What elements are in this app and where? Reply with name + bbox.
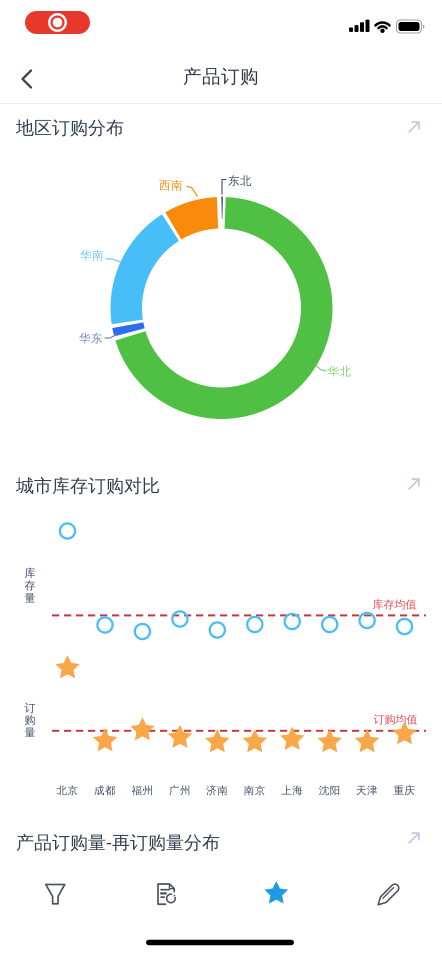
- staticText: 产品订购: [183, 65, 259, 88]
- staticText: 华北: [327, 364, 351, 379]
- staticText: 北京: [56, 784, 78, 797]
- staticText: 南京: [244, 784, 266, 797]
- button[interactable]: Open full chart: [400, 113, 428, 141]
- staticText: 城市库存订购对比: [16, 475, 160, 497]
- staticText: 上海: [281, 784, 303, 797]
- staticText: 量: [24, 726, 35, 739]
- staticText: 华东: [79, 331, 103, 346]
- staticText: 库存均值: [372, 598, 416, 611]
- staticText: 量: [24, 591, 35, 605]
- button[interactable]: Open full chart: [400, 824, 428, 852]
- staticText: 天津: [356, 784, 378, 797]
- staticText: 购: [24, 713, 35, 727]
- staticText: 华南: [80, 248, 104, 263]
- staticText: 产品订购量-再订购量分布: [16, 830, 220, 854]
- staticText: 重庆: [393, 784, 415, 797]
- staticText: 西南: [159, 178, 183, 193]
- button[interactable]: Stop screen recording: [25, 11, 90, 34]
- staticText: 订购均值: [373, 713, 417, 726]
- staticText: 东北: [228, 174, 252, 188]
- staticText: 地区订购分布: [16, 117, 124, 139]
- staticText: 订: [24, 701, 35, 715]
- button[interactable]: Open full chart: [400, 470, 428, 498]
- staticText: 福州: [131, 784, 153, 797]
- staticText: 广州: [169, 784, 191, 797]
- staticText: 沈阳: [319, 784, 341, 797]
- button[interactable]: Edit: [331, 863, 442, 925]
- button[interactable]: Back: [0, 57, 44, 101]
- staticText: 存: [24, 579, 35, 592]
- button[interactable]: Filter: [0, 863, 110, 925]
- staticText: 库: [24, 566, 35, 580]
- button[interactable]: Reports: [110, 863, 221, 925]
- staticText: 济南: [206, 784, 228, 797]
- button[interactable]: Favorites: [221, 863, 331, 925]
- staticText: 成都: [94, 784, 116, 797]
